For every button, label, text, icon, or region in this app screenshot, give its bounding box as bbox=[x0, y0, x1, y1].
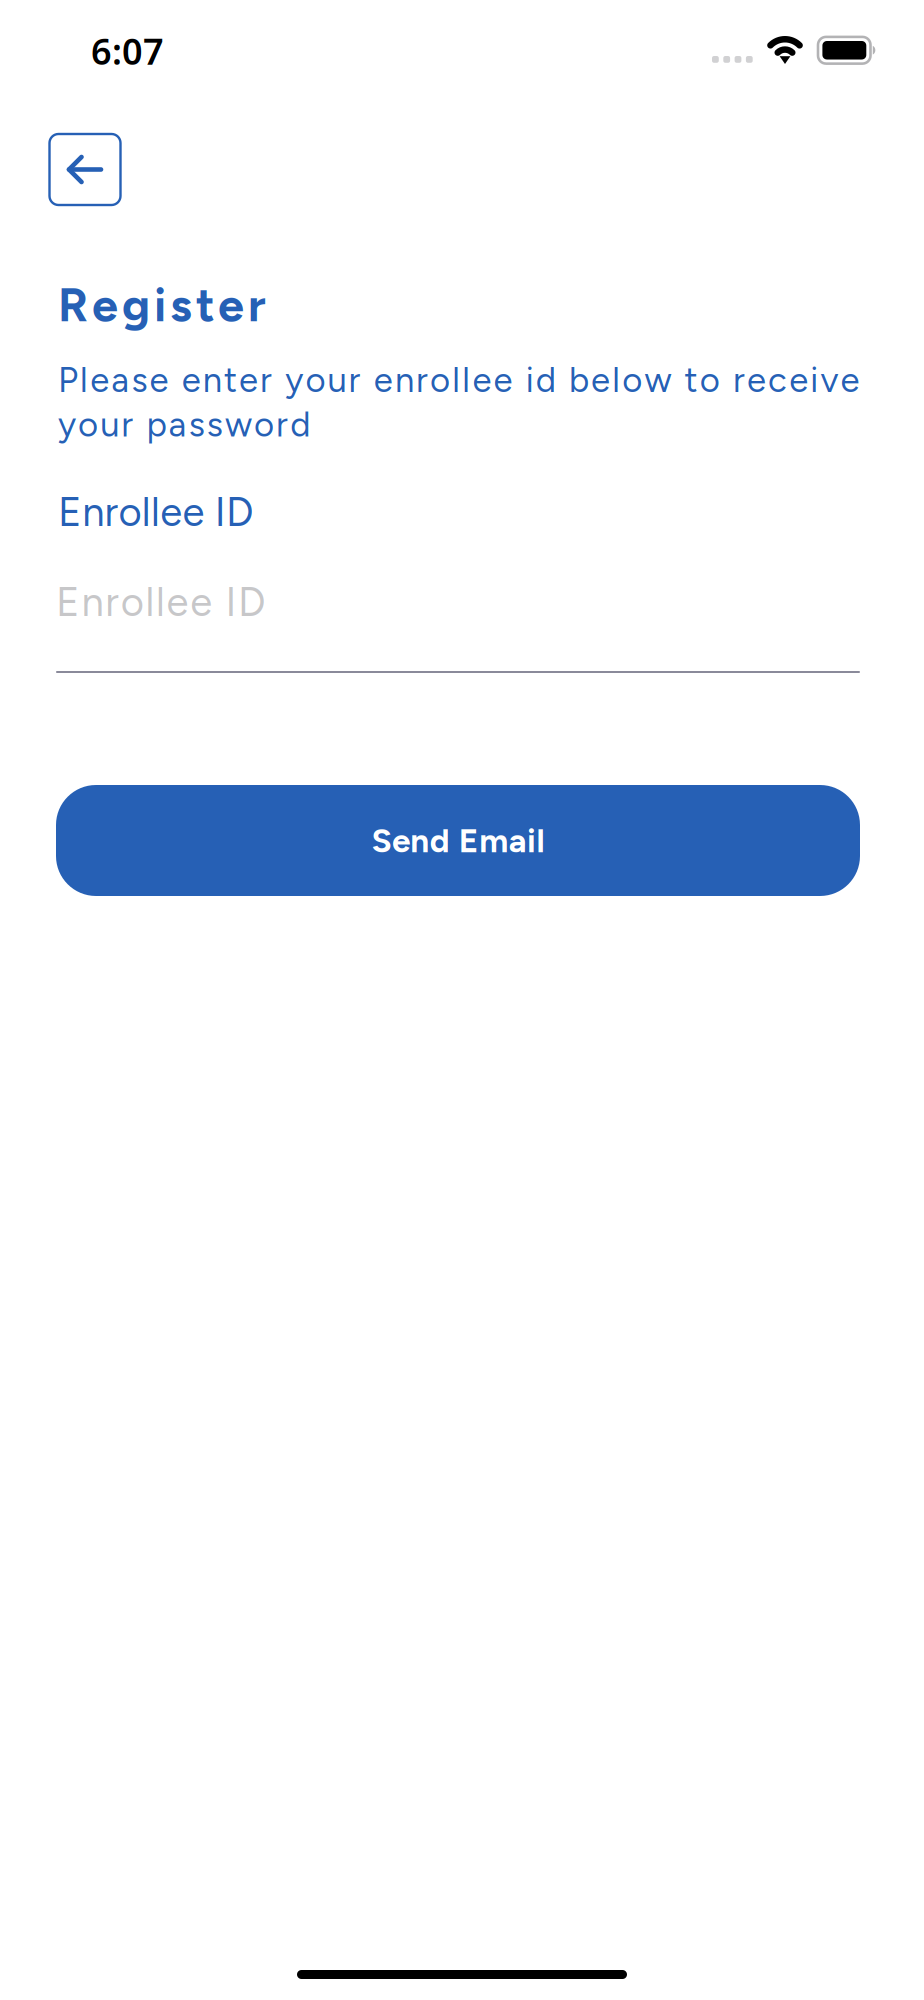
staticText: Register bbox=[58, 277, 266, 333]
staticText: Enrollee ID bbox=[58, 488, 254, 536]
button[interactable]: Send Email bbox=[56, 785, 860, 896]
staticText: Please enter your enrollee id below to r… bbox=[58, 359, 859, 445]
staticText: Send Email bbox=[371, 820, 545, 860]
button[interactable]: Enrollee ID bbox=[56, 578, 860, 673]
staticText: Enrollee ID bbox=[56, 578, 266, 626]
button[interactable]: Back bbox=[49, 134, 120, 205]
staticText: 6:07 bbox=[91, 27, 164, 75]
